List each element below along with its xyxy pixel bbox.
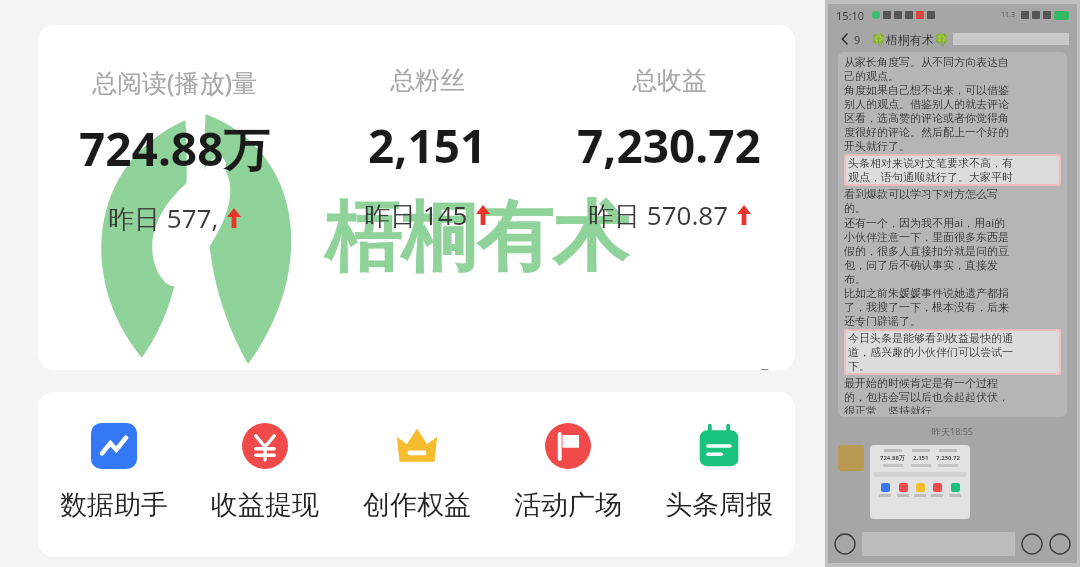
staticText: 昨日 570.87 <box>588 197 729 233</box>
staticText: 15:10 <box>836 8 865 23</box>
staticText: 昨日 577, <box>108 200 219 236</box>
staticText: 道，感兴趣的小伙伴们可以尝试一 <box>848 345 1013 359</box>
staticText: 昨天18:55 <box>838 425 1067 437</box>
button[interactable]: 语音 <box>834 533 856 555</box>
staticText: 724.88万 <box>880 454 905 462</box>
staticText: 度很好的评论。然后配上一个好的 <box>844 125 1009 139</box>
staticText: 假的，很多人直接扣分就是问的豆 <box>844 244 1009 258</box>
staticText: 头条周报 <box>665 488 773 522</box>
staticText: 9 <box>854 32 861 47</box>
staticText: 己的观点。 <box>844 69 899 83</box>
button[interactable]: 创作权益 <box>342 420 492 522</box>
staticText: 总阅读(播放)量 <box>92 65 258 99</box>
staticText: 下。 <box>848 359 870 373</box>
staticText: 活动广场 <box>514 488 622 522</box>
staticText: 区看，选高赞的评论或者你觉得角 <box>844 111 1009 125</box>
other: 头条周报 <box>696 423 742 469</box>
staticText: 还专门辟谣了。 <box>844 314 921 328</box>
button[interactable]: 表情 <box>1021 533 1043 555</box>
staticText: 看到爆款可以学习下对方怎么写 <box>844 187 998 201</box>
staticText: 7,230.72 <box>577 114 761 177</box>
staticText: 角度如果自己想不出来，可以借鉴 <box>844 83 1009 97</box>
staticText: 从家长角度写。从不同方向表达自 <box>844 55 1009 69</box>
staticText: 梧桐有术 <box>325 190 629 286</box>
other: 创作权益 <box>394 423 440 469</box>
staticText: 收益提现 <box>211 488 319 522</box>
staticText: 还有一个，因为我不用ai，用ai的 <box>844 215 1006 230</box>
staticText: 观点，语句通顺就行了。大家平时 <box>848 170 1013 184</box>
button[interactable]: 头条周报 <box>644 420 794 522</box>
staticText: 数据助手 <box>60 488 168 522</box>
staticText: 昨日 145 <box>364 197 468 233</box>
staticText: 很正常。坚持就行。 <box>844 404 943 414</box>
button[interactable]: 活动广场 <box>493 420 643 522</box>
staticText: 开头就行了。 <box>844 139 910 153</box>
staticText: 布。 <box>844 272 866 286</box>
button[interactable]: 更多 <box>1049 533 1071 555</box>
staticText: 比如之前朱媛媛事件说她遗产都捐 <box>844 286 1009 300</box>
staticText: 别人的观点。借鉴别人的就去评论 <box>844 97 1009 111</box>
staticText: 最开始的时候肯定是有一个过程 <box>844 376 998 390</box>
button[interactable]: 收益提现 <box>190 420 340 522</box>
staticText: 创作权益 <box>363 488 471 522</box>
staticText: 头条相对来说对文笔要求不高，有 <box>848 156 1013 170</box>
staticText: 2,151 <box>913 454 929 462</box>
staticText: 2,151 <box>368 114 487 177</box>
staticText: 总收益 <box>632 65 707 96</box>
staticText: 的。 <box>844 201 866 215</box>
staticText: 今日头条是能够看到收益最快的通 <box>848 331 1013 345</box>
staticText: 🍀梧桐有术🍀 <box>871 32 949 47</box>
button[interactable]: 返回 <box>836 30 854 48</box>
other: 活动广场 <box>545 423 591 469</box>
other: 收益提现 <box>242 423 288 469</box>
staticText: 7,230.72 <box>936 454 960 462</box>
staticText: 了，我搜了一下，根本没有，后来 <box>844 300 1009 314</box>
staticText: 包，问了后不确认事实，直接发 <box>844 258 998 272</box>
other: 数据助手 <box>91 423 137 469</box>
staticText: 小伙伴注意一下，里面很多东西是 <box>844 230 1009 244</box>
staticText: 11.3 <box>1001 10 1015 20</box>
staticText: 的，包括会写以后也会起起伏伏， <box>844 390 1009 404</box>
button[interactable]: 数据助手 <box>39 420 189 522</box>
staticText: 总粉丝 <box>390 65 465 96</box>
staticText: 724.88万 <box>79 117 270 180</box>
